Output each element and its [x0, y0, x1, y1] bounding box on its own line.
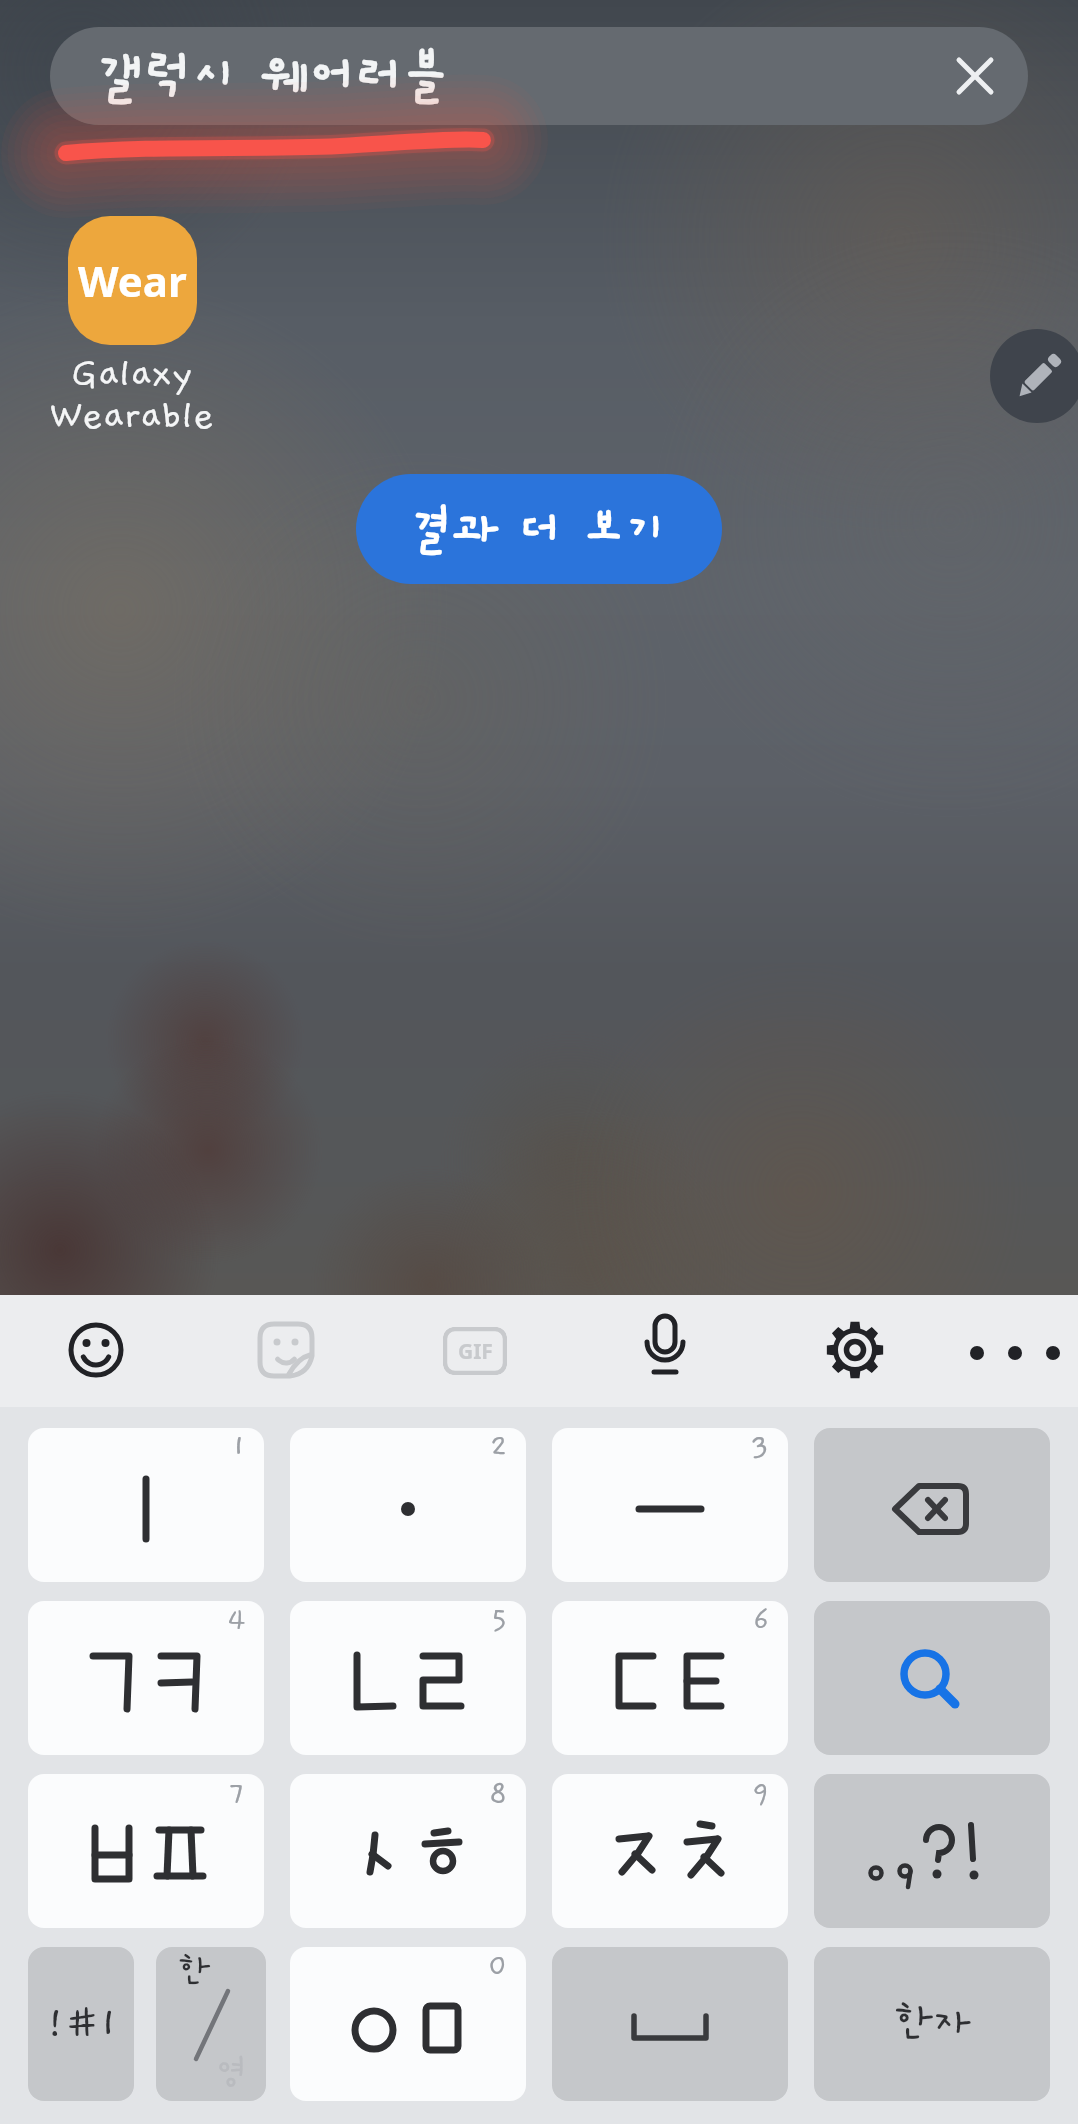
staticText: 영	[216, 2055, 248, 2093]
staticText: 한	[178, 1953, 210, 1991]
button[interactable]	[58, 1313, 134, 1389]
button[interactable]: 2	[290, 1428, 526, 1582]
staticText: 8	[489, 1776, 508, 1810]
button[interactable]	[248, 1313, 324, 1389]
button[interactable]: 결과 더 보기	[356, 474, 722, 584]
staticText: Galaxy	[71, 352, 193, 396]
button[interactable]	[990, 329, 1078, 423]
button[interactable]: 7	[28, 1774, 264, 1928]
staticText: 1	[232, 1430, 246, 1464]
button[interactable]: 9	[552, 1774, 788, 1928]
button[interactable]: 3	[552, 1428, 788, 1582]
button[interactable]: 4	[28, 1601, 264, 1755]
staticText: 9	[752, 1776, 770, 1810]
button[interactable]: !#1	[28, 1947, 134, 2101]
staticText: 5	[491, 1603, 508, 1637]
button[interactable]: 갤럭시 웨어러블	[50, 27, 1028, 125]
staticText: GIF	[458, 1337, 493, 1366]
button[interactable]	[817, 1313, 893, 1389]
button[interactable]	[814, 1601, 1050, 1755]
button[interactable]	[814, 1774, 1050, 1928]
staticText: 결과 더 보기	[411, 503, 668, 555]
button[interactable]: 0	[290, 1947, 526, 2101]
button[interactable]: 한자	[814, 1947, 1050, 2101]
button[interactable]: Wear	[68, 216, 197, 345]
button[interactable]	[552, 1947, 788, 2101]
button[interactable]: 5	[290, 1601, 526, 1755]
staticText: 0	[488, 1949, 508, 1983]
button[interactable]: 한	[156, 1947, 266, 2101]
staticText: 2	[490, 1430, 508, 1464]
button[interactable]: 6	[552, 1601, 788, 1755]
staticText: 7	[229, 1776, 246, 1810]
button[interactable]: GIF	[443, 1327, 507, 1375]
button[interactable]	[627, 1313, 703, 1389]
staticText: 6	[753, 1603, 770, 1637]
button[interactable]	[814, 1428, 1050, 1582]
button[interactable]: 1	[28, 1428, 264, 1582]
staticText: Wearable	[49, 394, 215, 438]
staticText: Wear	[78, 252, 187, 309]
staticText: 갤럭시 웨어러블	[98, 48, 450, 105]
staticText: 4	[227, 1603, 246, 1637]
button[interactable]: 8	[290, 1774, 526, 1928]
staticText: 3	[751, 1430, 770, 1464]
staticText: !#1	[45, 2001, 118, 2047]
button[interactable]	[977, 1313, 1053, 1389]
staticText: 한자	[894, 2001, 970, 2047]
